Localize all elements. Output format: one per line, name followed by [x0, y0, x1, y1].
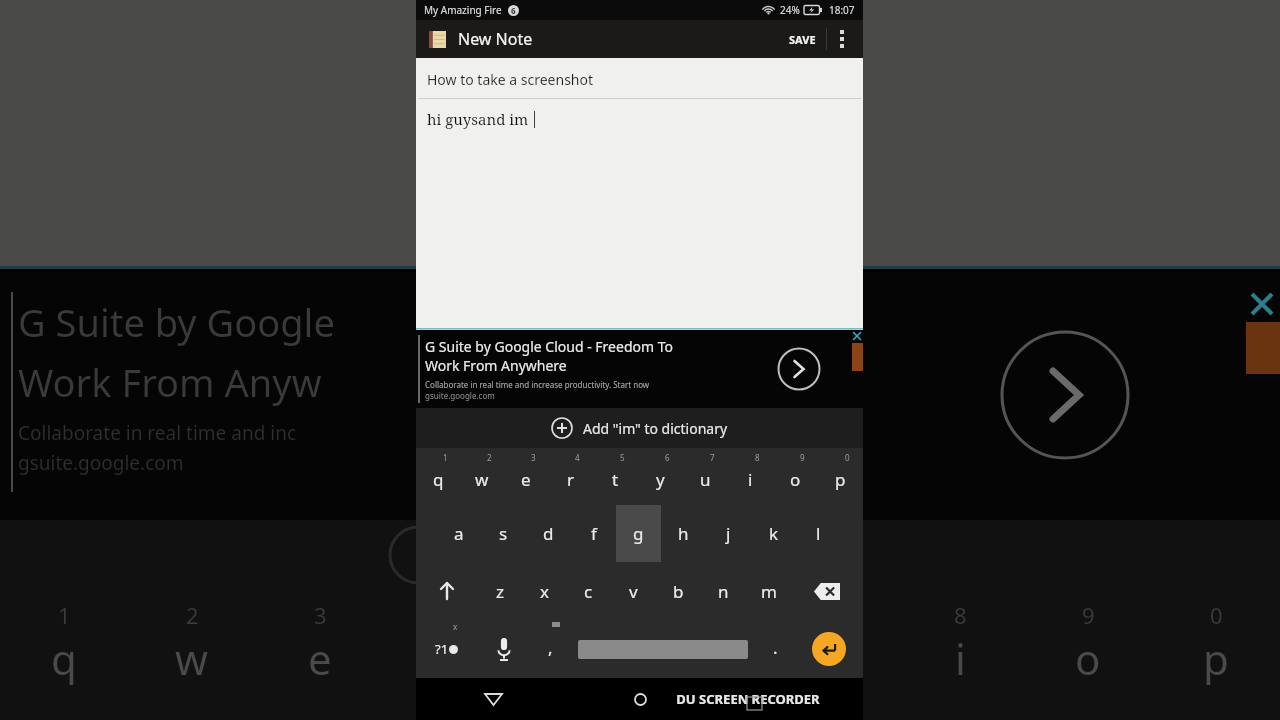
button[interactable]: G Suite by Google Cloud - Freedom To	[416, 330, 863, 408]
button[interactable]: d	[526, 505, 571, 562]
button[interactable]: f	[571, 505, 616, 562]
staticText: 5	[620, 452, 625, 463]
staticText: G Suite by Google Cloud - Freedom To	[425, 337, 673, 356]
button[interactable]: Add "im" to dictionary	[416, 408, 863, 448]
staticText: h	[678, 522, 689, 545]
staticText: 3	[531, 452, 536, 463]
staticText: G Suite by Google	[18, 296, 335, 348]
button[interactable]: .	[755, 620, 795, 678]
button[interactable]: Close ad	[851, 330, 863, 342]
staticText: j	[726, 522, 731, 545]
button[interactable]: hi guysand im	[416, 99, 863, 328]
button[interactable]: g	[616, 505, 661, 562]
button[interactable]: 6	[638, 448, 683, 505]
button[interactable]: Open ad	[777, 347, 821, 391]
staticText: 18:07	[829, 3, 855, 17]
staticText: Collaborate in real time and inc	[18, 420, 297, 446]
button[interactable]: SAVE	[779, 24, 826, 55]
staticText: .	[773, 636, 778, 659]
staticText: 1	[58, 600, 71, 630]
staticText: g	[633, 522, 644, 545]
staticText: DU SCREEN RECORDER	[676, 690, 820, 708]
staticText: Add "im" to dictionary	[583, 419, 728, 438]
staticText: u	[700, 468, 711, 491]
staticText: 9	[1082, 600, 1095, 630]
button[interactable]: k	[751, 505, 796, 562]
button[interactable]: b	[656, 562, 701, 620]
staticText: 24%	[780, 3, 800, 17]
button[interactable]: 1	[416, 448, 460, 505]
staticText: q	[51, 630, 77, 687]
staticText: ,	[548, 636, 553, 659]
button[interactable]: Enter	[795, 620, 863, 678]
staticText: Work From Anyw	[18, 356, 322, 408]
button[interactable]: Home	[623, 682, 657, 716]
button[interactable]: 0	[818, 448, 863, 505]
button[interactable]: 5	[593, 448, 638, 505]
staticText: SAVE	[789, 32, 816, 47]
button[interactable]: h	[661, 505, 706, 562]
staticText: 0	[1210, 600, 1223, 630]
staticText: 6	[511, 5, 516, 16]
staticText: v	[629, 580, 638, 603]
staticText: New Note	[458, 28, 533, 50]
staticText: e	[521, 468, 531, 491]
button[interactable]: 4	[548, 448, 593, 505]
button[interactable]: ?1	[416, 620, 477, 678]
staticText: 8	[755, 452, 760, 463]
button[interactable]: How to take a screenshot	[416, 58, 863, 98]
staticText: 9	[800, 452, 805, 463]
button[interactable]: 3	[504, 448, 548, 505]
button[interactable]: Back	[476, 682, 510, 716]
button[interactable]: m	[746, 562, 791, 620]
staticText: b	[673, 580, 684, 603]
button[interactable]: n	[701, 562, 746, 620]
button[interactable]: a	[437, 505, 481, 562]
staticText: c	[584, 580, 593, 603]
button[interactable]: x	[522, 562, 566, 620]
button[interactable]: 8	[728, 448, 773, 505]
staticText: 2	[186, 600, 199, 630]
staticText: y	[693, 630, 715, 687]
staticText: m	[761, 580, 777, 603]
staticText: i	[955, 630, 966, 687]
staticText: w	[175, 630, 209, 687]
staticText: f	[591, 522, 597, 545]
staticText: u	[819, 630, 845, 687]
button[interactable]: Space	[570, 620, 755, 678]
button[interactable]: Backspace	[791, 562, 863, 620]
staticText: o	[1075, 630, 1101, 687]
button[interactable]: l	[796, 505, 841, 562]
staticText: 7	[710, 452, 715, 463]
staticText: How to take a screenshot	[427, 70, 594, 89]
staticText: Work From Anywhere	[425, 356, 567, 375]
staticText: 4	[442, 600, 455, 630]
button[interactable]: Voice input	[477, 620, 530, 678]
button[interactable]: Shift	[416, 562, 478, 620]
button[interactable]: ,	[530, 620, 570, 678]
button[interactable]: c	[566, 562, 611, 620]
staticText: 0	[845, 452, 850, 463]
staticText: 6	[665, 452, 670, 463]
button[interactable]: s	[481, 505, 526, 562]
staticText: s	[499, 522, 508, 545]
button[interactable]: 2	[460, 448, 504, 505]
staticText: z	[496, 580, 504, 603]
staticText: gsuite.google.com	[18, 450, 184, 476]
staticText: i	[748, 468, 753, 491]
button[interactable]: 9	[773, 448, 818, 505]
button[interactable]: z	[478, 562, 522, 620]
staticText: y	[656, 468, 665, 491]
button[interactable]: More options	[827, 20, 857, 58]
button[interactable]: v	[611, 562, 656, 620]
staticText: w	[475, 468, 489, 491]
button[interactable]: j	[706, 505, 751, 562]
staticText: 8	[954, 600, 967, 630]
staticText: k	[769, 522, 779, 545]
button[interactable]: 7	[683, 448, 728, 505]
staticText: 1	[443, 452, 448, 463]
staticText: 3	[314, 600, 327, 630]
staticText: ?1	[435, 640, 449, 658]
